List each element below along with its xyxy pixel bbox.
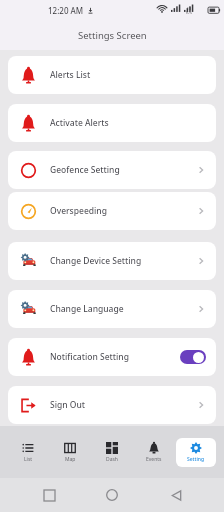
staticText: Change Device Setting [50,255,142,267]
button[interactable]: Overspeeding [8,192,216,230]
button[interactable]: Sign Out [8,386,216,424]
staticText: 12:20 AM [48,5,84,16]
staticText: Events [146,456,162,463]
staticText: Activate Alerts [50,117,109,129]
staticText: Settings Screen [78,29,147,42]
staticText: Notification Setting [50,351,129,363]
button[interactable]: Events [134,438,174,467]
button[interactable]: Change Language [8,290,216,328]
staticText: Change Language [50,303,124,315]
staticText: Overspeeding [50,205,107,217]
staticText: List [24,456,33,463]
button[interactable]: Setting [176,438,216,467]
button[interactable]: Dash [92,438,132,467]
button[interactable]: Geofence Setting [8,151,216,189]
button[interactable]: Recents [34,480,64,510]
staticText: Setting [187,456,205,463]
button[interactable]: Notification Setting [8,338,216,376]
button[interactable]: Alerts List [8,56,216,94]
staticText: Dash [106,456,118,463]
button[interactable]: Notification toggle [180,350,206,364]
button[interactable]: Back [161,480,191,510]
staticText: Map [65,456,76,463]
staticText: 13 K/s [186,6,192,15]
button[interactable]: Change Device Setting [8,242,216,280]
staticText: Geofence Setting [50,164,120,176]
staticText: Alerts List [50,69,91,81]
button[interactable]: Activate Alerts [8,104,216,142]
button[interactable]: Home [97,480,127,510]
staticText: Sign Out [50,399,86,411]
button[interactable]: List [8,438,48,467]
button[interactable]: Map [50,438,90,467]
